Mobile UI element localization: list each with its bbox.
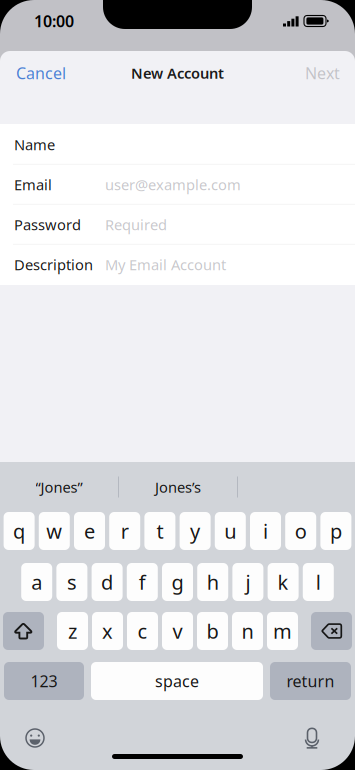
staticText: x bbox=[102, 618, 113, 644]
staticText: f bbox=[139, 569, 146, 595]
staticText: n bbox=[241, 618, 253, 644]
staticText: a bbox=[31, 569, 42, 595]
button[interactable]: n bbox=[232, 612, 263, 650]
staticText: k bbox=[278, 569, 289, 595]
staticText: Name bbox=[14, 135, 55, 154]
staticText: New Account bbox=[131, 63, 224, 83]
staticText: u bbox=[224, 518, 236, 544]
button[interactable]: z bbox=[57, 612, 88, 650]
staticText: q bbox=[13, 518, 25, 544]
button[interactable]: d bbox=[92, 563, 123, 601]
button[interactable]: k bbox=[268, 563, 299, 601]
button[interactable]: v bbox=[162, 612, 193, 650]
staticText: j bbox=[245, 569, 250, 595]
staticText: h bbox=[207, 569, 219, 595]
button[interactable]: c bbox=[127, 612, 158, 650]
staticText: Required bbox=[105, 215, 167, 234]
staticText: “Jones” bbox=[35, 477, 82, 497]
button[interactable]: f bbox=[127, 563, 158, 601]
button[interactable]: Password bbox=[0, 204, 355, 244]
staticText: b bbox=[206, 618, 218, 644]
staticText: Email bbox=[14, 175, 52, 194]
button[interactable]: t bbox=[144, 512, 175, 550]
button[interactable]: Delete bbox=[311, 612, 352, 650]
staticText: Jones’s bbox=[155, 477, 201, 497]
staticText: Next bbox=[305, 62, 340, 84]
button[interactable]: “Jones” bbox=[0, 465, 118, 509]
button[interactable]: i bbox=[250, 512, 281, 550]
button[interactable]: b bbox=[197, 612, 228, 650]
button[interactable]: m bbox=[267, 612, 298, 650]
staticText: z bbox=[68, 618, 77, 644]
staticText: Password bbox=[14, 215, 81, 234]
staticText: g bbox=[171, 569, 183, 595]
button[interactable]: Shift bbox=[3, 612, 44, 650]
staticText: 10:00 bbox=[34, 10, 74, 32]
button[interactable]: return bbox=[270, 662, 351, 700]
button[interactable]: a bbox=[21, 563, 52, 601]
button[interactable]: y bbox=[180, 512, 211, 550]
staticText: d bbox=[101, 569, 113, 595]
staticText: l bbox=[316, 569, 321, 595]
button[interactable]: Email bbox=[0, 164, 355, 204]
button[interactable]: Next bbox=[290, 51, 355, 95]
staticText: s bbox=[67, 569, 77, 595]
button[interactable]: Dictation bbox=[292, 723, 332, 753]
button[interactable]: p bbox=[320, 512, 351, 550]
staticText: space bbox=[155, 670, 199, 692]
button[interactable]: u bbox=[215, 512, 246, 550]
staticText: t bbox=[156, 518, 163, 544]
button[interactable]: Name bbox=[0, 124, 355, 164]
button[interactable]: s bbox=[56, 563, 87, 601]
staticText: user@example.com bbox=[105, 175, 241, 194]
button[interactable]: l bbox=[303, 563, 334, 601]
button[interactable]: w bbox=[39, 512, 70, 550]
button[interactable]: e bbox=[74, 512, 105, 550]
button[interactable]: 123 bbox=[4, 662, 84, 700]
staticText: p bbox=[330, 518, 342, 544]
staticText: c bbox=[137, 618, 147, 644]
button[interactable]: x bbox=[92, 612, 123, 650]
staticText: w bbox=[46, 518, 62, 544]
staticText: Cancel bbox=[16, 62, 66, 84]
staticText: 123 bbox=[30, 670, 57, 692]
staticText: return bbox=[286, 670, 334, 692]
button[interactable]: Description bbox=[0, 244, 355, 284]
staticText: Description bbox=[14, 255, 93, 274]
button[interactable]: j bbox=[232, 563, 263, 601]
button[interactable]: q bbox=[4, 512, 35, 550]
staticText: m bbox=[273, 618, 292, 644]
staticText: My Email Account bbox=[105, 255, 226, 274]
button[interactable]: g bbox=[162, 563, 193, 601]
staticText: y bbox=[190, 518, 200, 544]
button[interactable]: h bbox=[197, 563, 228, 601]
button[interactable]: Emoji keyboard bbox=[15, 723, 55, 753]
button[interactable]: o bbox=[285, 512, 316, 550]
staticText: o bbox=[295, 518, 307, 544]
button[interactable]: r bbox=[109, 512, 140, 550]
button[interactable]: Cancel bbox=[0, 51, 82, 95]
staticText: i bbox=[263, 518, 268, 544]
staticText: e bbox=[84, 518, 95, 544]
button[interactable]: Jones’s bbox=[119, 465, 237, 509]
staticText: r bbox=[121, 518, 129, 544]
staticText: v bbox=[172, 618, 182, 644]
button[interactable]: space bbox=[91, 662, 263, 700]
